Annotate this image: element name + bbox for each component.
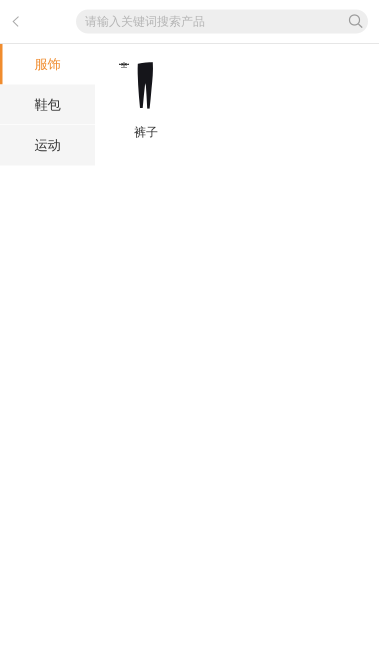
button[interactable]: Back [0, 0, 32, 43]
button[interactable]: 运动 [0, 125, 95, 165]
button[interactable]: 裤子 [118, 54, 174, 140]
staticText: 裤子 [134, 125, 158, 140]
button[interactable]: 服饰 [0, 44, 95, 84]
staticText: 运动 [34, 137, 60, 153]
button[interactable]: 鞋包 [0, 84, 95, 125]
button[interactable]: 请输入关键词搜索产品 [76, 9, 368, 33]
staticText: 服饰 [34, 56, 60, 72]
staticText: 鞋包 [34, 97, 60, 113]
staticText: 请输入关键词搜索产品 [85, 14, 205, 29]
